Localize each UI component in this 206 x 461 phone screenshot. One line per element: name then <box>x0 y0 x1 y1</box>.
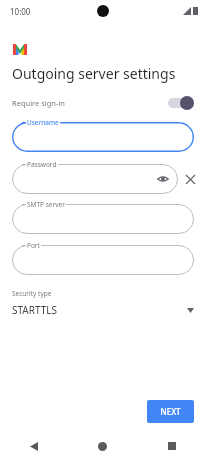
staticText: NEXT <box>160 406 181 417</box>
button[interactable]: NEXT <box>147 400 194 423</box>
button[interactable]: SMTP server <box>12 204 194 234</box>
staticText: SMTP server <box>27 200 65 209</box>
button[interactable]: Username <box>12 122 194 152</box>
button[interactable]: Clear password <box>182 171 198 187</box>
staticText: STARTTLS <box>12 303 58 317</box>
staticText: Security type <box>12 289 52 298</box>
staticText: Port <box>27 241 40 250</box>
button[interactable]: Back <box>0 431 68 461</box>
button[interactable]: Security type <box>0 289 206 317</box>
button[interactable]: Require sign-in <box>0 92 206 114</box>
button[interactable]: Password <box>12 164 178 194</box>
button[interactable]: Show password <box>156 172 170 186</box>
staticText: Require sign-in <box>12 98 65 108</box>
staticText: Outgoing server settings <box>12 64 176 83</box>
staticText: Username <box>27 118 59 127</box>
button[interactable]: Home <box>68 431 137 461</box>
button[interactable]: Recent apps <box>137 431 206 461</box>
staticText: 10:00 <box>10 6 31 17</box>
staticText: Password <box>27 160 57 169</box>
button[interactable]: Port <box>12 245 194 275</box>
